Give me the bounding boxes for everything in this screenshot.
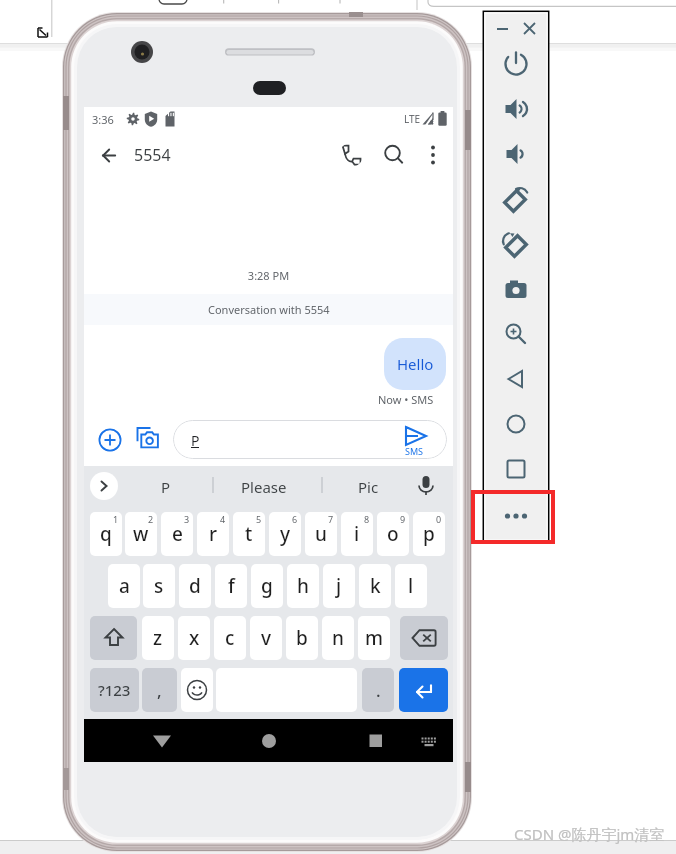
staticText: , <box>157 679 162 702</box>
staticText: n <box>332 625 344 651</box>
button[interactable]: g <box>251 564 283 608</box>
button[interactable]: Voice input <box>414 474 438 498</box>
staticText: Conversation with 5554 <box>208 302 330 317</box>
button[interactable]: Add attachment <box>98 428 122 452</box>
staticText: s <box>154 573 164 599</box>
button[interactable]: o <box>377 512 409 556</box>
button[interactable]: r <box>197 512 229 556</box>
button[interactable]: Volume up <box>502 95 530 123</box>
button[interactable]: Camera <box>136 426 160 450</box>
staticText: 0 <box>436 513 442 525</box>
staticText: 3:28 PM <box>84 268 453 283</box>
button[interactable]: Hello <box>384 338 446 390</box>
staticText: 1 <box>113 513 119 525</box>
staticText: 4 <box>220 513 226 525</box>
button[interactable]: z <box>142 616 174 660</box>
button[interactable]: f <box>215 564 247 608</box>
button[interactable]: Rotate right <box>502 230 530 258</box>
button[interactable]: Show more suggestions <box>90 472 118 500</box>
button[interactable]: p <box>413 512 445 556</box>
button[interactable]: Screenshot <box>502 275 530 303</box>
staticText: 3 <box>184 513 190 525</box>
button[interactable]: Call <box>339 143 363 167</box>
button[interactable]: Home <box>259 731 279 751</box>
staticText: 2 <box>148 513 154 525</box>
button[interactable]: t <box>233 512 265 556</box>
staticText: o <box>387 521 399 547</box>
button[interactable]: ?123 <box>90 668 139 712</box>
button[interactable]: Home <box>502 410 530 438</box>
staticText: e <box>172 521 183 547</box>
staticText: m <box>365 625 383 651</box>
staticText: Please <box>241 477 287 497</box>
button[interactable]: k <box>359 564 391 608</box>
button[interactable]: b <box>286 616 318 660</box>
button[interactable]: e <box>161 512 193 556</box>
button[interactable]: Recent apps <box>366 731 386 751</box>
button[interactable]: h <box>287 564 319 608</box>
staticText: w <box>133 521 149 547</box>
button[interactable]: l <box>395 564 427 608</box>
button[interactable]: . <box>362 668 394 712</box>
button[interactable]: , <box>142 668 177 712</box>
staticText: 6 <box>292 513 298 525</box>
staticText: . <box>376 679 381 702</box>
button[interactable]: Send SMS <box>399 424 433 458</box>
button[interactable]: Back <box>502 365 530 393</box>
staticText: 9 <box>400 513 406 525</box>
staticText: q <box>100 521 112 547</box>
button[interactable]: w <box>125 512 157 556</box>
staticText: d <box>189 573 201 599</box>
staticText: 8 <box>364 513 370 525</box>
button[interactable]: P <box>173 420 447 459</box>
staticText: LTE <box>404 112 421 126</box>
button[interactable]: a <box>108 564 140 608</box>
staticText: SMS <box>405 445 424 457</box>
button[interactable]: s <box>143 564 175 608</box>
button[interactable]: Rotate left <box>502 185 530 213</box>
button[interactable]: v <box>250 616 282 660</box>
button[interactable]: Hide keyboard <box>418 730 440 752</box>
staticText: g <box>261 573 273 599</box>
button[interactable]: u <box>305 512 337 556</box>
button[interactable]: d <box>179 564 211 608</box>
staticText: ?123 <box>98 680 131 700</box>
button[interactable]: Volume down <box>502 140 530 168</box>
button[interactable]: n <box>322 616 354 660</box>
button[interactable]: Power <box>502 50 530 78</box>
button[interactable]: Overview <box>502 455 530 483</box>
button[interactable]: Minimize <box>492 18 514 40</box>
button[interactable]: Back <box>152 731 172 751</box>
staticText: v <box>261 625 272 651</box>
staticText: 5 <box>256 513 262 525</box>
button[interactable]: j <box>323 564 355 608</box>
button[interactable]: More <box>502 502 530 530</box>
staticText: i <box>354 521 360 547</box>
staticText: f <box>228 573 235 599</box>
button[interactable]: Enter <box>399 668 448 712</box>
staticText: k <box>370 573 381 599</box>
staticText: u <box>315 521 327 547</box>
staticText: 3:36 <box>92 112 114 127</box>
staticText: P <box>191 431 200 450</box>
button[interactable]: q <box>90 512 122 556</box>
staticText: CSDN @陈丹宇jm清室 <box>514 824 665 844</box>
staticText: x <box>189 625 200 651</box>
button[interactable]: Zoom <box>502 320 530 348</box>
button[interactable]: More options <box>421 143 445 167</box>
button[interactable]: y <box>269 512 301 556</box>
button[interactable]: m <box>358 616 390 660</box>
button[interactable]: Shift <box>90 616 137 660</box>
button[interactable]: Back <box>96 140 126 170</box>
button[interactable]: x <box>178 616 210 660</box>
staticText: r <box>209 521 218 547</box>
button[interactable]: Close <box>519 18 541 40</box>
button[interactable]: i <box>341 512 373 556</box>
button[interactable]: c <box>214 616 246 660</box>
button[interactable]: Search <box>382 143 406 167</box>
staticText: Pic <box>358 477 379 497</box>
button[interactable]: Emoji <box>181 668 213 712</box>
button[interactable]: Backspace <box>400 616 448 660</box>
staticText: 5554 <box>134 144 171 166</box>
